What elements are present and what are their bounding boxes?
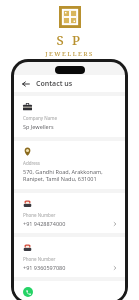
staticText: Address [23,160,41,166]
button[interactable]: WhatsApp [14,281,125,300]
staticText: Contact us [36,79,73,89]
button[interactable]: Address [14,141,125,189]
button[interactable]: Back [20,78,31,89]
staticText: Phone Number [23,212,56,218]
staticText: +91 9428874000 [23,220,112,227]
button[interactable]: Company Name [14,96,125,137]
staticText: S P [56,31,83,49]
button[interactable]: Phone Number [14,193,125,233]
staticText: Phone Number [23,256,56,262]
staticText: Sp Jewellers [23,123,54,130]
staticText: +91 9360597080 [23,264,112,271]
staticText: 570, Gandhi Road, Arakkonam, Ranipet, Ta… [23,168,116,182]
button[interactable]: Phone Number [14,237,125,277]
staticText: Company Name [23,115,58,121]
other: WhatsApp [23,287,33,293]
staticText: JEWELLERS [45,50,94,58]
